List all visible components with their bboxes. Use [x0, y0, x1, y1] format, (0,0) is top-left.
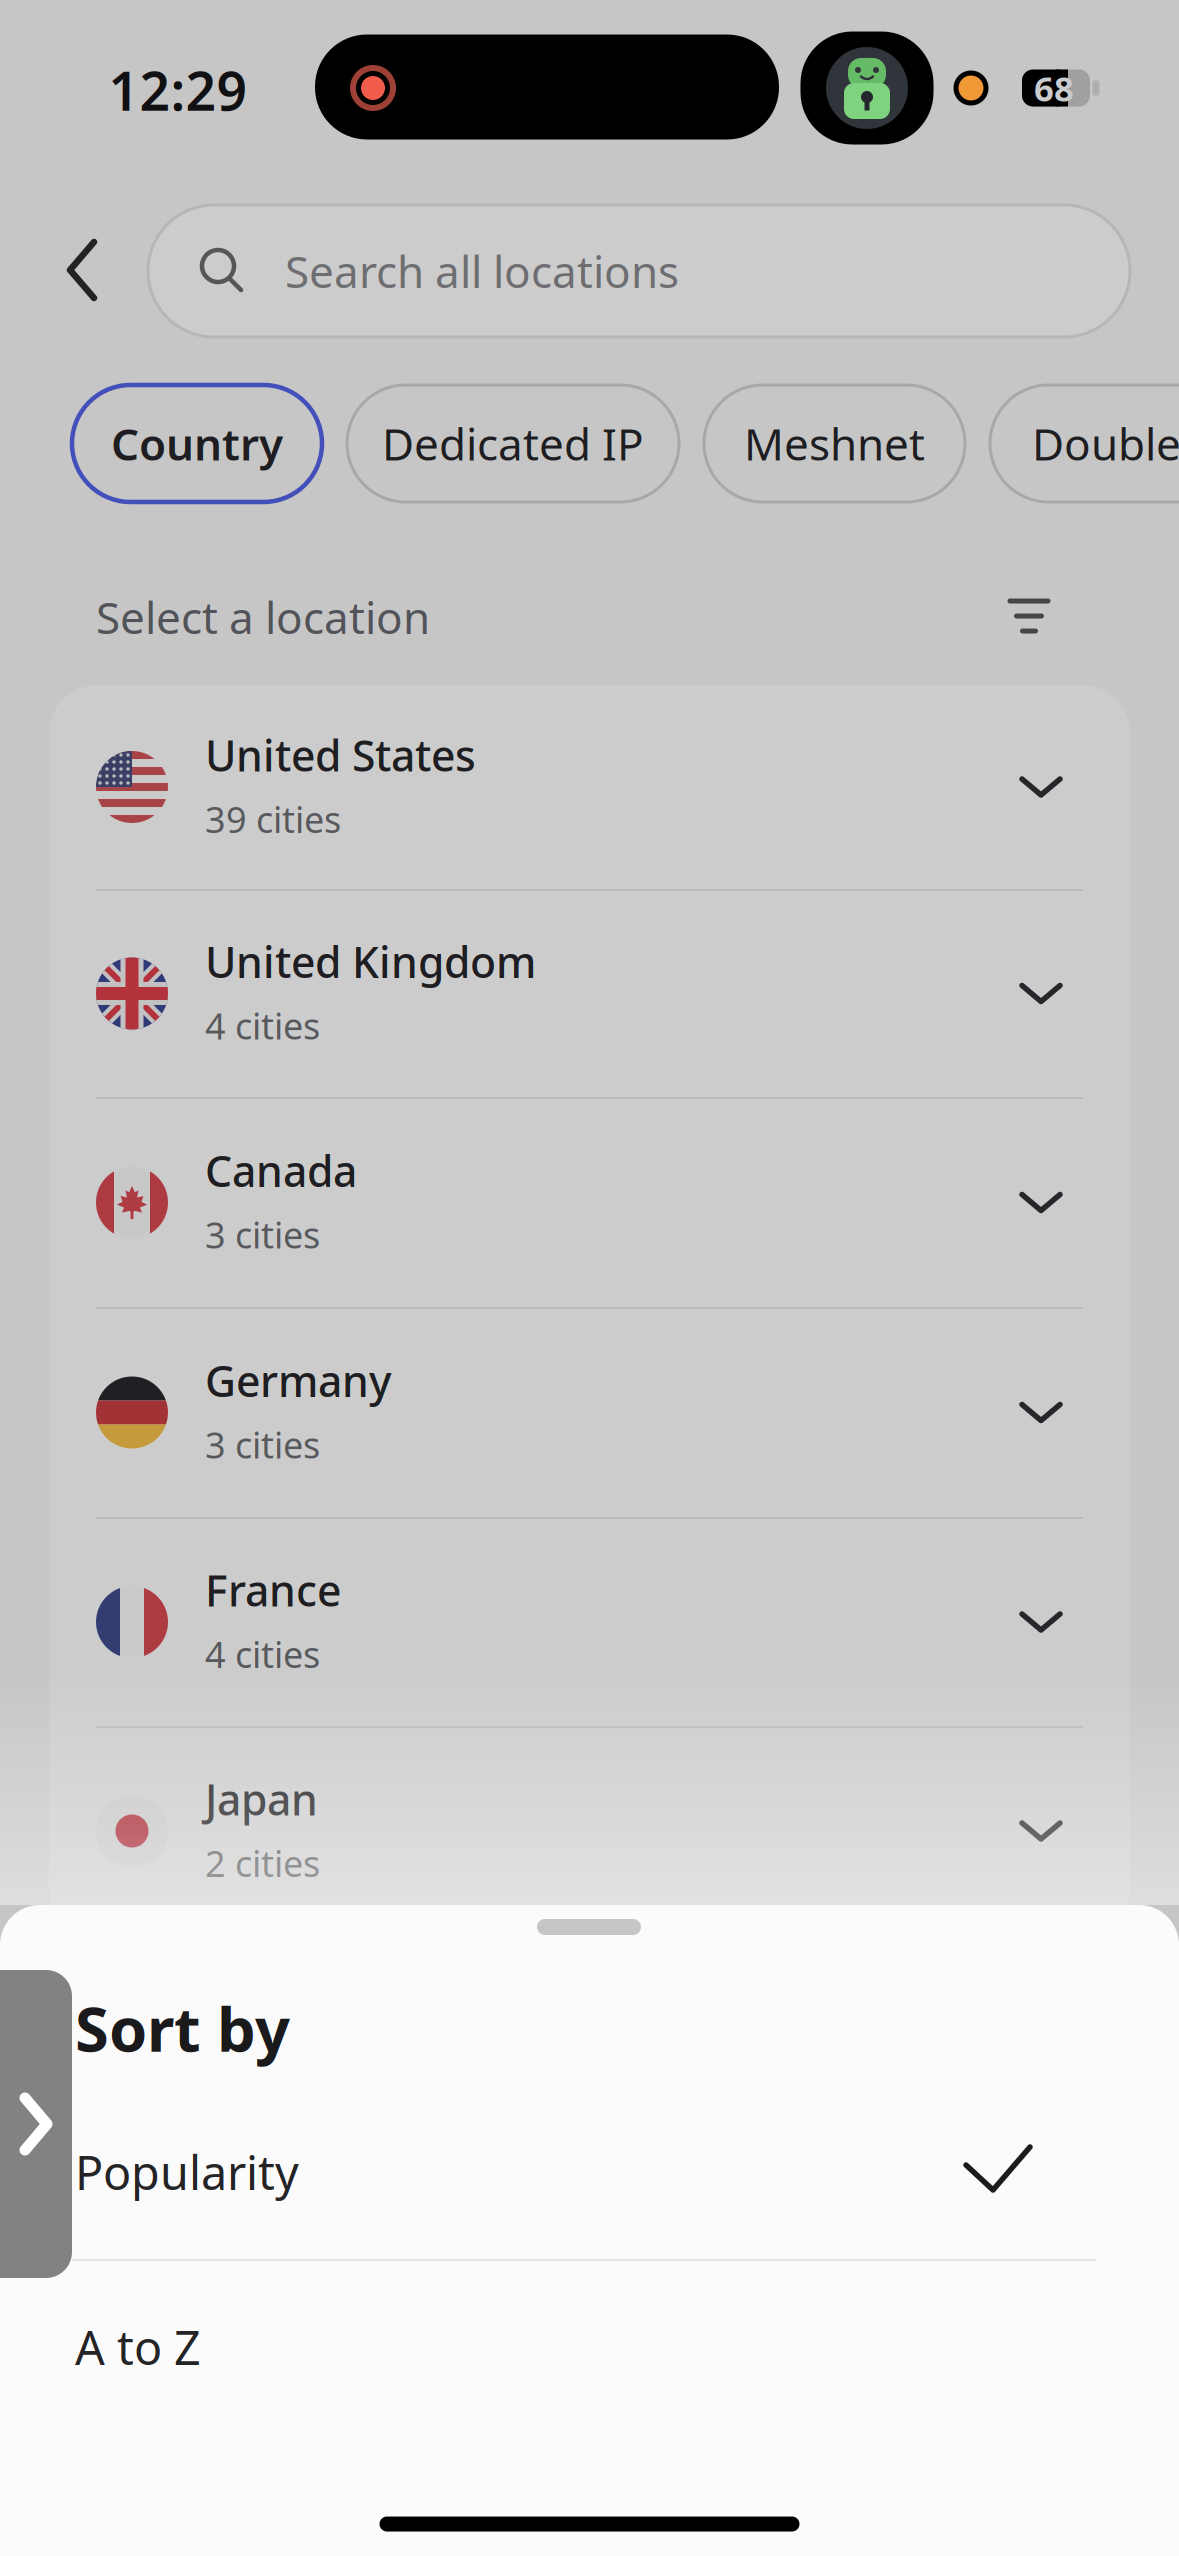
button[interactable]: United Kingdom — [49, 889, 1130, 1098]
staticText: United Kingdom — [205, 933, 536, 990]
staticText: 39 cities — [205, 795, 341, 843]
button[interactable]: Canada — [49, 1098, 1130, 1307]
button[interactable]: Expand side panel — [0, 1970, 72, 2278]
staticText: 12:29 — [108, 55, 247, 125]
button[interactable]: Germany — [49, 1308, 1130, 1517]
staticText: Meshnet — [744, 414, 925, 473]
button[interactable]: Double VPN — [990, 385, 1179, 502]
button[interactable]: Search all locations — [148, 205, 1130, 337]
staticText: 68 — [1034, 65, 1074, 111]
staticText: Dedicated IP — [382, 414, 644, 473]
button[interactable]: France — [49, 1518, 1130, 1727]
button[interactable]: Dedicated IP — [347, 385, 679, 502]
button[interactable]: United States — [49, 683, 1130, 892]
staticText: Canada — [205, 1142, 357, 1199]
staticText: Japan — [205, 1771, 318, 1827]
staticText: Select a location — [96, 588, 430, 646]
button[interactable]: Country — [72, 385, 322, 502]
staticText: Double VPN — [1032, 414, 1179, 473]
staticText: United States — [205, 727, 476, 783]
staticText: 3 cities — [205, 1421, 320, 1468]
button[interactable]: Meshnet — [704, 385, 965, 502]
button[interactable]: Japan — [49, 1727, 1130, 1936]
staticText: 4 cities — [205, 1630, 320, 1678]
button[interactable]: Popularity — [72, 2084, 1100, 2260]
staticText: Sort by — [75, 1987, 290, 2069]
button[interactable]: A to Z — [72, 2260, 1100, 2434]
button[interactable]: Back — [68, 240, 98, 302]
button[interactable]: Sort — [999, 596, 1059, 636]
staticText: 3 cities — [205, 1211, 320, 1258]
staticText: Country — [111, 414, 283, 473]
staticText: A to Z — [75, 2316, 201, 2378]
staticText: Popularity — [75, 2141, 299, 2203]
staticText: Germany — [205, 1352, 392, 1409]
staticText: Search all locations — [285, 242, 679, 300]
staticText: 2 cities — [205, 1839, 320, 1887]
staticText: 4 cities — [205, 1002, 320, 1049]
staticText: France — [205, 1562, 341, 1618]
